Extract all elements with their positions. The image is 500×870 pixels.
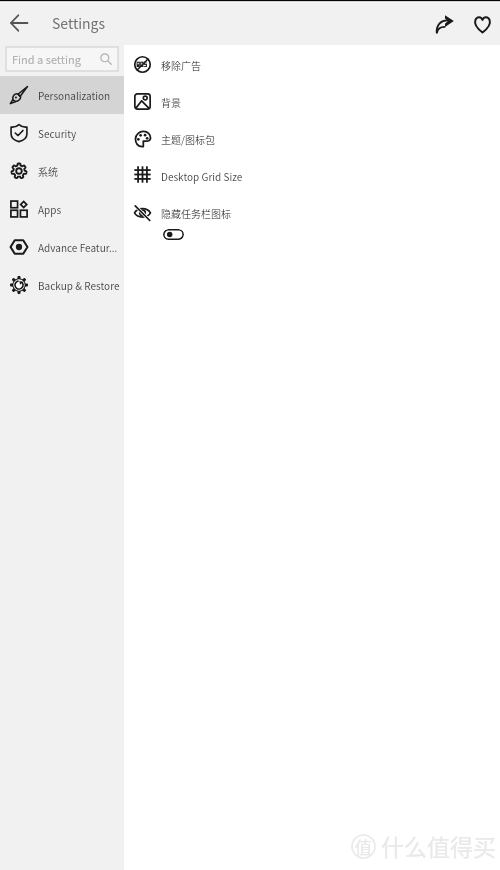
staticText: Find a setting bbox=[12, 51, 81, 67]
staticText: Personalization bbox=[38, 88, 111, 102]
button[interactable]: Advance Featur... bbox=[0, 228, 124, 266]
button[interactable]: 背景 bbox=[124, 83, 500, 120]
button[interactable]: Apps bbox=[0, 190, 124, 228]
staticText: Advance Featur... bbox=[38, 240, 118, 254]
button[interactable]: 主题/图标包 bbox=[124, 120, 500, 157]
staticText: 主题/图标包 bbox=[161, 132, 215, 146]
button[interactable]: Hide taskbar icon toggle bbox=[163, 229, 184, 240]
button[interactable]: 移除广告 bbox=[124, 46, 500, 83]
staticText: 系统 bbox=[38, 164, 58, 178]
staticText: Security bbox=[38, 126, 77, 140]
staticText: 什么值得买 bbox=[381, 829, 496, 862]
button[interactable]: Security bbox=[0, 114, 124, 152]
staticText: Backup & Restore bbox=[38, 278, 120, 292]
staticText: 移除广告 bbox=[161, 58, 201, 72]
staticText: Apps bbox=[38, 202, 62, 216]
button[interactable]: Back bbox=[3, 7, 35, 39]
button[interactable]: Favorite bbox=[465, 6, 499, 40]
button[interactable]: Personalization bbox=[0, 76, 124, 114]
staticText: Desktop Grid Size bbox=[161, 169, 243, 183]
staticText: Settings bbox=[52, 13, 106, 33]
button[interactable]: Backup & Restore bbox=[0, 266, 124, 304]
button[interactable]: Find a setting bbox=[6, 47, 118, 71]
button[interactable]: Share bbox=[428, 6, 462, 40]
staticText: 背景 bbox=[161, 95, 181, 109]
button[interactable]: 系统 bbox=[0, 152, 124, 190]
staticText: 值 bbox=[355, 834, 372, 859]
button[interactable]: Desktop Grid Size bbox=[124, 157, 500, 194]
button[interactable]: 隐藏任务栏图标 bbox=[124, 194, 500, 231]
staticText: 隐藏任务栏图标 bbox=[161, 206, 231, 220]
